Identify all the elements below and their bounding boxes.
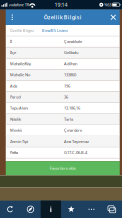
staticText: Pafta [10, 150, 18, 155]
staticText: Zemin Tipi [10, 139, 28, 144]
staticText: Ada [10, 83, 17, 88]
button[interactable]: Reload [0, 201, 20, 218]
staticText: Favorilere ekle [50, 165, 76, 171]
staticText: 133860 [64, 72, 76, 77]
staticText: G17-C-06-B-4 [64, 150, 87, 155]
staticText: Tarla [64, 116, 73, 122]
button[interactable]: Menu [6, 10, 19, 25]
staticText: Çanakkale [64, 39, 82, 44]
button[interactable]: More [81, 201, 102, 218]
staticText: Mevkii [10, 128, 22, 133]
staticText: 19:14 [54, 1, 67, 8]
staticText: Özellik Bilgisi [10, 28, 34, 33]
staticText: Özellik Bilgisi [44, 14, 82, 21]
staticText: Tapu Alanı [10, 105, 28, 111]
button[interactable]: Info [41, 201, 61, 218]
staticText: İlçe [10, 50, 16, 55]
staticText: Ana Taşınmaz [64, 139, 89, 144]
staticText: 196 [64, 83, 70, 88]
staticText: İl [10, 39, 12, 44]
staticText: Mahalle No [10, 72, 30, 77]
staticText: Çınardere [64, 128, 82, 133]
button[interactable]: Navigate [20, 201, 41, 218]
button[interactable]: Tabs [102, 201, 122, 218]
button[interactable]: Favorilere ekle [6, 161, 120, 175]
button[interactable]: Bookmarks [61, 201, 81, 218]
button[interactable]: Close [107, 10, 120, 25]
staticText: %63 [104, 2, 111, 7]
staticText: 36 [64, 94, 68, 100]
staticText: 13.186,16 [64, 105, 80, 111]
staticText: vodafone TR [9, 2, 29, 7]
staticText: Mahalle/Köy [10, 61, 31, 66]
staticText: Adilhan [64, 61, 77, 66]
staticText: Gelibolu [64, 50, 78, 55]
staticText: Bina/BS Listesi [42, 28, 68, 33]
staticText: Nitelik [10, 116, 21, 122]
button[interactable]: Özellik Bilgisi [6, 25, 38, 36]
staticText: Parsel [10, 94, 21, 100]
button[interactable]: Bina/BS Listesi [38, 25, 72, 36]
